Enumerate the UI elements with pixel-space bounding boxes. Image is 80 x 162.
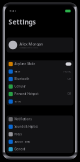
- staticText: Wi-Fi: [14, 70, 20, 73]
- button[interactable]: Alex Morgan: [7, 37, 73, 52]
- staticText: Screen Time: [14, 140, 30, 143]
- staticText: General: [14, 147, 25, 151]
- staticText: Airplane Mode: [14, 62, 35, 66]
- staticText: VPN: [14, 100, 20, 103]
- button[interactable]: Airplane Mode: [7, 60, 73, 68]
- staticText: Sounds & Haptics: [14, 125, 37, 128]
- button[interactable]: Cellular: [7, 83, 73, 90]
- button[interactable]: Wi-Fi: [7, 68, 73, 75]
- staticText: Notifications: [14, 117, 31, 121]
- staticText: On: [67, 77, 71, 81]
- button[interactable]: Bluetooth: [7, 75, 73, 83]
- staticText: Cellular: [14, 85, 25, 88]
- button[interactable]: Screen Time: [7, 138, 73, 145]
- staticText: Bluetooth: [14, 77, 29, 81]
- button[interactable]: Sounds & Haptics: [7, 123, 73, 130]
- staticText: Focus: [14, 132, 21, 136]
- staticText: Apple ID, iCloud & Purchases: [19, 47, 38, 49]
- staticText: Personal Hotspot: [14, 92, 38, 96]
- button[interactable]: Notifications: [7, 115, 73, 123]
- staticText: Alex Morgan: [19, 41, 42, 47]
- staticText: Home: [63, 70, 71, 73]
- button[interactable]: Focus: [7, 130, 73, 138]
- staticText: Off: [67, 92, 71, 96]
- button[interactable]: VPN: [7, 98, 73, 105]
- button[interactable]: General: [7, 145, 73, 153]
- staticText: 9:41: [9, 9, 16, 13]
- button[interactable]: Personal Hotspot: [7, 90, 73, 98]
- staticText: Settings: [8, 18, 35, 26]
